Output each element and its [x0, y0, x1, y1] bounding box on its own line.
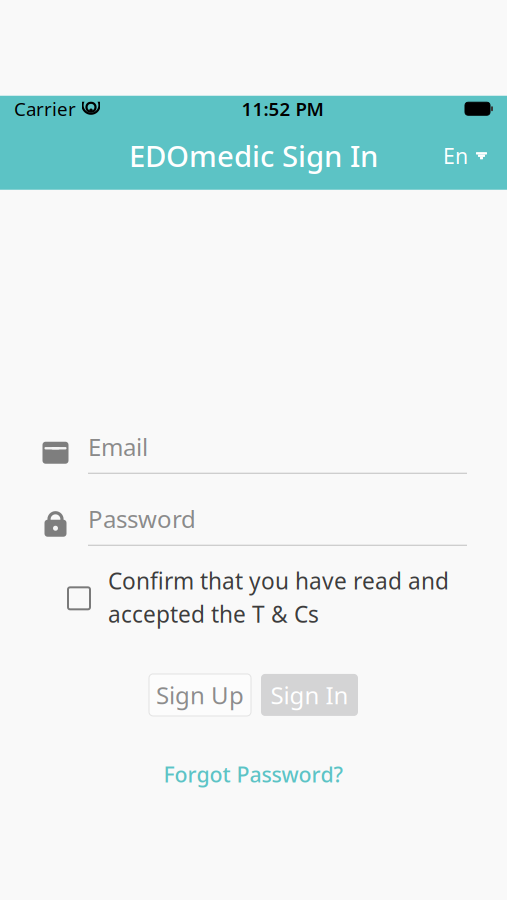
staticText: Sign In: [270, 679, 348, 711]
staticText: accepted the T & Cs: [108, 599, 319, 629]
staticText: Email: [88, 431, 148, 463]
button[interactable]: Forgot Password?: [149, 752, 357, 796]
button[interactable]: Sign Up: [149, 674, 251, 716]
button[interactable]: Confirm that you have read and: [0, 566, 507, 629]
staticText: En: [443, 142, 468, 170]
staticText: Password: [88, 503, 196, 535]
button[interactable]: En: [433, 134, 497, 178]
button[interactable]: Sign In: [261, 674, 358, 716]
staticText: EDOmedic Sign In: [129, 136, 378, 175]
staticText: Carrier: [14, 96, 76, 121]
staticText: Confirm that you have read and: [108, 566, 449, 596]
staticText: Sign Up: [156, 679, 244, 711]
staticText: Forgot Password?: [163, 760, 343, 788]
staticText: 11:52 PM: [241, 96, 323, 121]
